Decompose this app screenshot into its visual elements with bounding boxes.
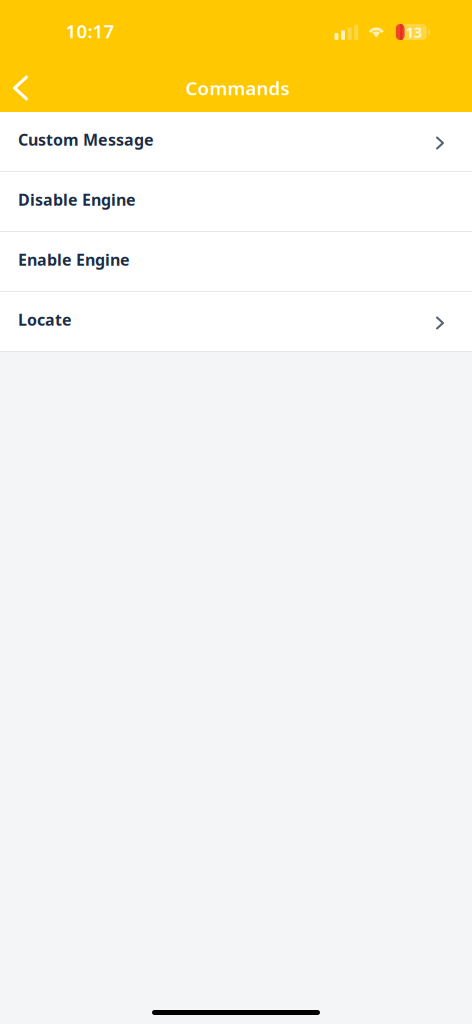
button[interactable]: Disable Engine — [0, 172, 472, 232]
button[interactable]: Locate — [0, 292, 472, 352]
staticText: Locate — [18, 309, 72, 330]
staticText: Disable Engine — [18, 189, 136, 210]
staticText: Enable Engine — [18, 249, 130, 270]
staticText: Commands — [185, 76, 289, 100]
button[interactable]: Enable Engine — [0, 232, 472, 292]
staticText: 13 — [406, 22, 422, 42]
staticText: 10:17 — [65, 19, 114, 43]
button[interactable]: Back — [0, 64, 41, 112]
staticText: Custom Message — [18, 129, 154, 150]
button[interactable]: Custom Message — [0, 112, 472, 172]
